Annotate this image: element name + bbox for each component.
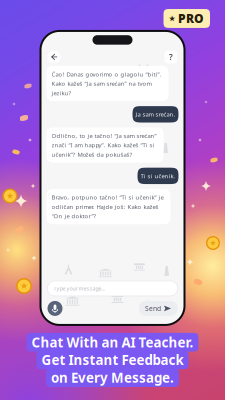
staticText: Odlično, to je tačno! “Ja sam srećan” [51,132,156,140]
button[interactable]: Help [164,50,177,63]
staticText: znači “I am happy”. Kako kažeš “Ti si [51,141,154,149]
staticText: Ćao! Danas govorimo o glagolu “biti”. [51,70,161,78]
button[interactable]: Voice input [47,301,62,316]
staticText: “On je doktor”? [51,212,96,220]
staticText: jeziku? [51,89,71,97]
staticText: Ja sam srećan. [135,110,175,118]
button[interactable]: Back [47,50,60,63]
staticText: Chat With an AI Teacher. [31,333,193,351]
staticText: učenik”? Možeš da pokušaš? [51,150,132,158]
staticText: ? [169,52,173,62]
staticText: Send [145,304,161,313]
button[interactable]: ★ [163,9,210,28]
staticText: PRO [178,10,204,26]
staticText: odličan primer. Hajde još: Kako kažeš [51,203,158,211]
staticText: Bravo, potpuno tačno! “Ti si učenik” je [51,193,163,201]
staticText: Type your message... [53,285,104,292]
button[interactable]: Send [139,301,177,316]
staticText: Kako kažeš “Ja sam srećan” na tvom [51,79,151,87]
staticText: ★ [168,14,175,23]
staticText: on Every Message. [51,369,174,386]
staticText: Ti si učenik. [140,172,175,180]
staticText: Get Instant Feedback [41,351,183,369]
